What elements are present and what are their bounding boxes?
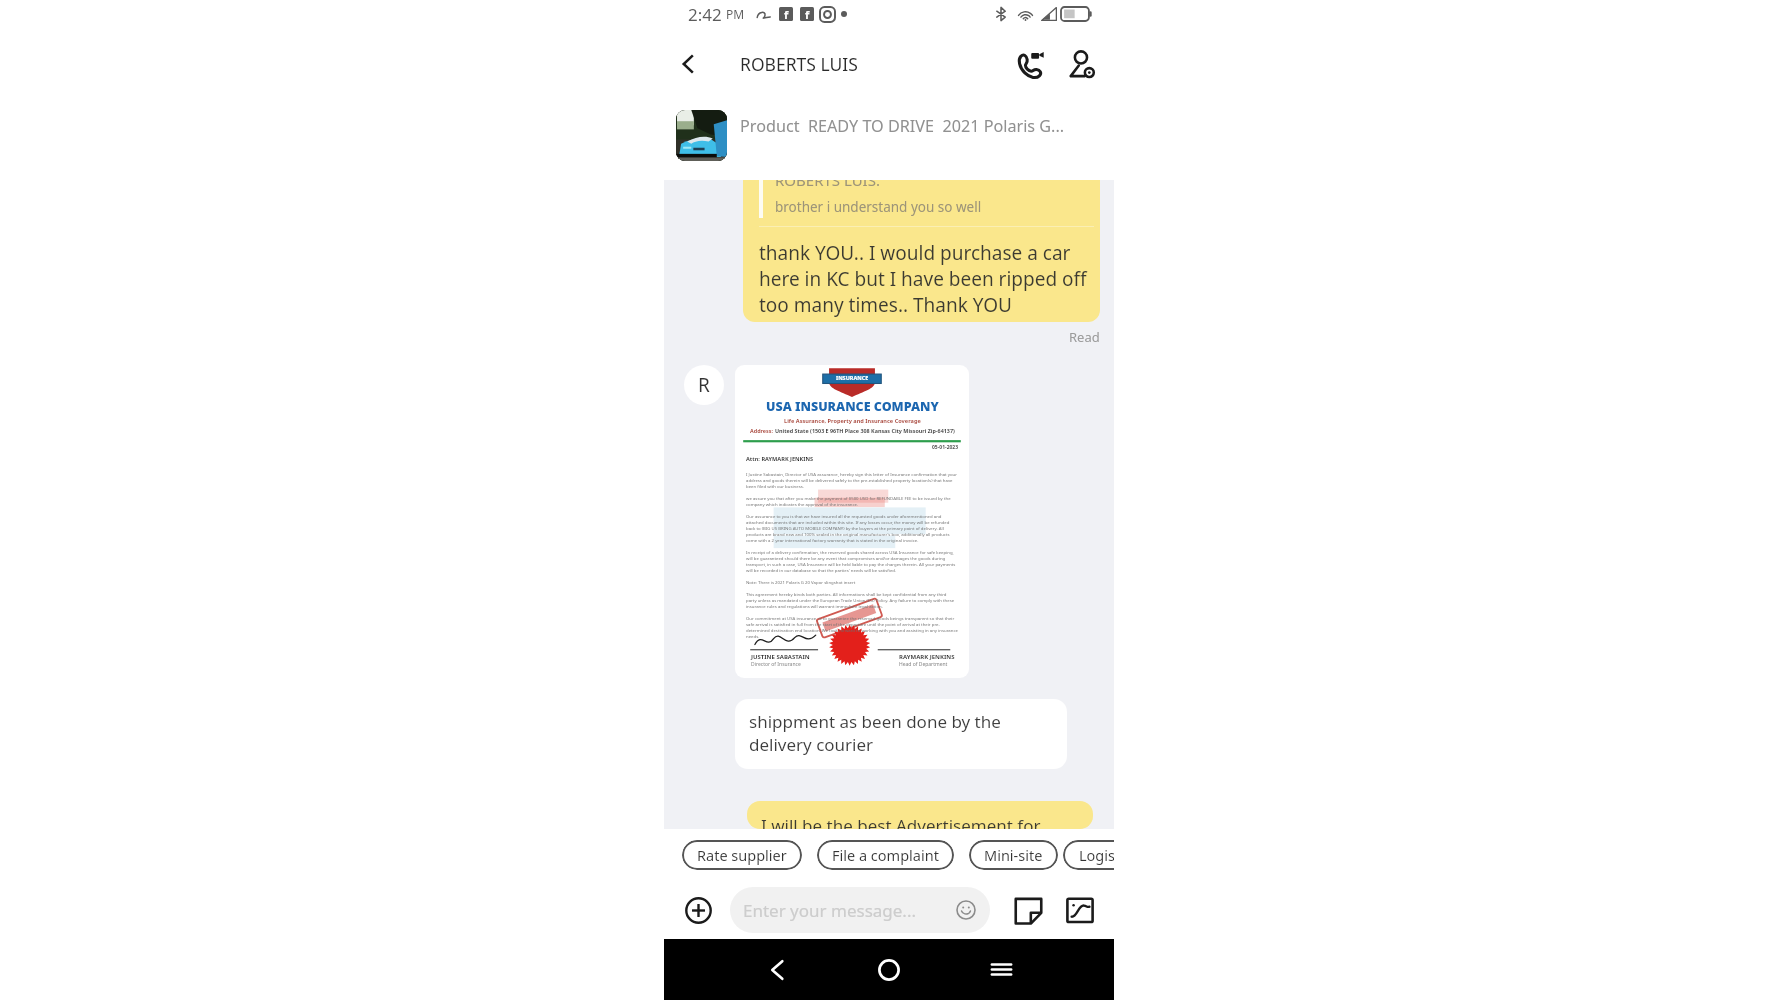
button[interactable]: Product READY TO DRIVE 2021 Polaris G... <box>664 100 1114 180</box>
staticText: I will be the best Advertisement for <box>761 814 1041 829</box>
button[interactable]: shippment as been done by the delivery c… <box>735 699 1067 769</box>
button[interactable]: Sticker <box>1011 893 1045 927</box>
button[interactable]: Mini-site <box>969 840 1058 870</box>
staticText: ROBERTS LUIS <box>740 52 858 76</box>
staticText: Address: <box>750 427 775 434</box>
staticText: Mini-site <box>984 845 1043 865</box>
staticText: This agreement hereby binds both parties… <box>746 591 958 609</box>
staticText: Note: There is 2021 Polaris G 20 Vapor s… <box>746 579 856 585</box>
staticText: File a complaint <box>832 845 939 865</box>
staticText: In receipt of a delivery confirmation, t… <box>746 549 958 573</box>
button[interactable]: Add attachment <box>683 895 713 925</box>
staticText: Our commitment at USA insurance, is to g… <box>746 615 958 639</box>
staticText: Director of Insurance <box>751 661 801 668</box>
staticText: PM <box>726 6 745 22</box>
staticText: ROBERTS LUIS: <box>775 180 880 190</box>
button[interactable]: Video call <box>1003 28 1055 100</box>
staticText: Read <box>1069 328 1100 346</box>
staticText: Our assurance to you is that we have ins… <box>746 513 958 543</box>
staticText: f <box>784 7 789 21</box>
staticText: brother i understand you so well <box>775 198 982 216</box>
button[interactable]: Recent apps <box>945 939 1057 1000</box>
staticText: we assure you that after you make the pa… <box>746 495 958 507</box>
button[interactable]: Enter your message... <box>730 887 990 933</box>
staticText: f <box>805 7 810 21</box>
staticText: JUSTINE SABASTAIN <box>751 653 810 661</box>
button[interactable]: Back <box>664 28 714 100</box>
staticText: RAYMARK JENKINS <box>899 653 955 661</box>
staticText: 05-01-2023 <box>932 444 959 451</box>
button[interactable]: Back <box>721 939 833 1000</box>
staticText: USA INSURANCE COMPANY <box>766 398 939 415</box>
button[interactable]: Gallery <box>1063 893 1097 927</box>
staticText: 2:42 <box>688 3 722 26</box>
staticText: Head of Department <box>899 661 948 668</box>
staticText: Product READY TO DRIVE 2021 Polaris G... <box>740 115 1065 137</box>
staticText: thank YOU.. I would purchase a car here … <box>759 240 1094 318</box>
staticText: Life Assurance, Property and Insurance C… <box>784 417 921 425</box>
button[interactable]: Rate supplier <box>682 840 802 870</box>
staticText: R <box>698 372 710 398</box>
button[interactable]: Home <box>833 939 945 1000</box>
staticText: United State (1503 E 96TH Place 308 Kans… <box>775 427 955 434</box>
button[interactable]: File a complaint <box>817 840 954 870</box>
button[interactable]: Logistics <box>1063 840 1114 870</box>
staticText: shippment as been done by the delivery c… <box>749 710 1053 756</box>
staticText: Rate supplier <box>697 845 787 865</box>
staticText: Logistics <box>1079 845 1114 865</box>
staticText: I Justine Sabastain, Director of USA ass… <box>746 471 958 489</box>
button[interactable]: INSURANCE <box>735 365 969 678</box>
staticText: Attn: RAYMARK JENKINS <box>746 455 814 463</box>
button[interactable]: Add contact <box>1055 28 1107 100</box>
staticText: Enter your message... <box>743 899 917 922</box>
staticText: INSURANCE <box>836 374 869 381</box>
